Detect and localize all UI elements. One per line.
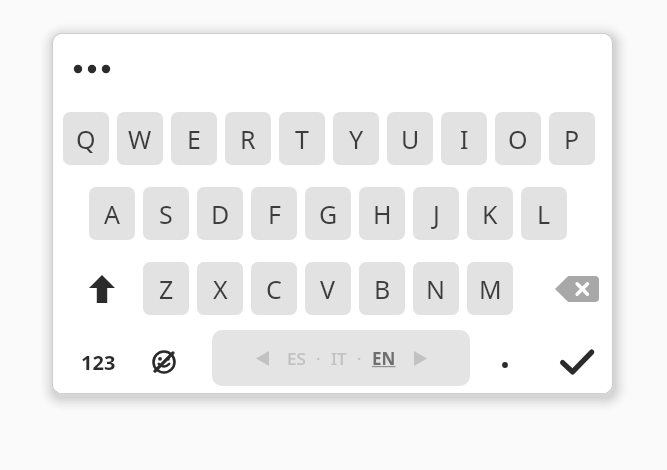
button[interactable]: H — [359, 187, 405, 240]
staticText: W — [128, 122, 152, 156]
button[interactable]: Period — [480, 338, 530, 386]
button[interactable]: 123 — [64, 338, 132, 386]
button[interactable]: U — [387, 112, 433, 165]
button[interactable]: V — [305, 262, 351, 315]
staticText: P — [564, 122, 580, 156]
button[interactable]: S — [143, 187, 189, 240]
button[interactable]: C — [251, 262, 297, 315]
button[interactable]: J — [413, 187, 459, 240]
button[interactable]: K — [467, 187, 513, 240]
staticText: C — [266, 272, 282, 306]
button[interactable]: X — [197, 262, 243, 315]
staticText: L — [537, 197, 551, 231]
button[interactable]: R — [225, 112, 271, 165]
button[interactable]: Shift — [66, 262, 138, 315]
staticText: E — [187, 122, 201, 156]
staticText: J — [433, 197, 440, 231]
staticText: H — [373, 197, 392, 231]
staticText: U — [401, 122, 420, 156]
staticText: Z — [159, 272, 174, 306]
staticText: F — [268, 197, 281, 231]
staticText: A — [104, 197, 120, 231]
button[interactable]: T — [279, 112, 325, 165]
staticText: B — [374, 272, 391, 306]
button[interactable]: Q — [63, 112, 109, 165]
staticText: T — [295, 122, 309, 156]
button[interactable]: More options — [64, 49, 120, 89]
button[interactable]: L — [521, 187, 567, 240]
button[interactable]: ES — [212, 330, 470, 386]
button[interactable]: Emoji disabled — [136, 338, 192, 386]
staticText: O — [508, 122, 528, 156]
button[interactable]: D — [197, 187, 243, 240]
staticText: G — [319, 197, 338, 231]
staticText: V — [320, 272, 336, 306]
staticText: N — [426, 272, 446, 306]
button[interactable]: O — [495, 112, 541, 165]
button[interactable]: P — [549, 112, 595, 165]
button[interactable]: M — [467, 262, 513, 315]
staticText: Y — [349, 122, 364, 156]
staticText: D — [211, 197, 230, 231]
button[interactable]: F — [251, 187, 297, 240]
staticText: X — [213, 272, 228, 306]
button[interactable]: Backspace — [547, 262, 607, 315]
staticText: · — [316, 348, 321, 370]
staticText: 123 — [81, 349, 116, 376]
button[interactable]: N — [413, 262, 459, 315]
button[interactable]: Z — [143, 262, 189, 315]
staticText: · — [357, 348, 362, 370]
staticText: S — [159, 197, 173, 231]
staticText: Q — [76, 122, 96, 156]
button[interactable]: Enter — [547, 336, 607, 388]
staticText: EN — [372, 347, 396, 370]
button[interactable]: G — [305, 187, 351, 240]
button[interactable]: E — [171, 112, 217, 165]
button[interactable]: A — [89, 187, 135, 240]
button[interactable]: I — [441, 112, 487, 165]
staticText: IT — [331, 347, 347, 370]
staticText: R — [240, 122, 256, 156]
staticText: K — [482, 197, 498, 231]
button[interactable]: B — [359, 262, 405, 315]
staticText: M — [479, 272, 502, 306]
button[interactable]: W — [117, 112, 163, 165]
staticText: ES — [287, 347, 306, 370]
staticText: I — [460, 122, 469, 156]
button[interactable]: Y — [333, 112, 379, 165]
